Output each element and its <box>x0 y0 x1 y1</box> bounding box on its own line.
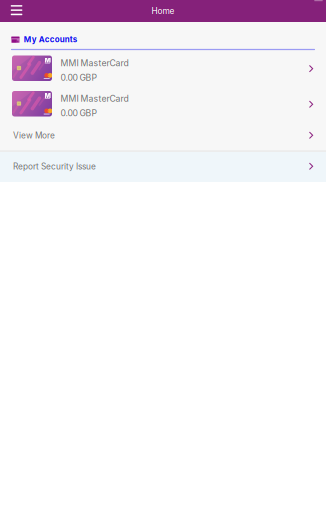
button[interactable]: Menu <box>0 0 32 22</box>
staticText: View More <box>13 131 55 141</box>
staticText: Home <box>151 6 174 16</box>
button[interactable]: View More <box>0 121 326 151</box>
staticText: 0.00 GBP <box>60 72 97 83</box>
button[interactable]: Report Security Issue <box>0 152 326 182</box>
staticText: MMI MasterCard <box>60 93 128 104</box>
staticText: 0.00 GBP <box>60 108 97 118</box>
staticText: M <box>45 92 51 100</box>
button[interactable]: M <box>0 87 326 120</box>
staticText: My Accounts <box>24 35 77 44</box>
staticText: Report Security Issue <box>13 162 96 172</box>
staticText: M <box>45 56 51 64</box>
button[interactable]: M <box>0 52 326 85</box>
staticText: MMI MasterCard <box>60 58 128 68</box>
